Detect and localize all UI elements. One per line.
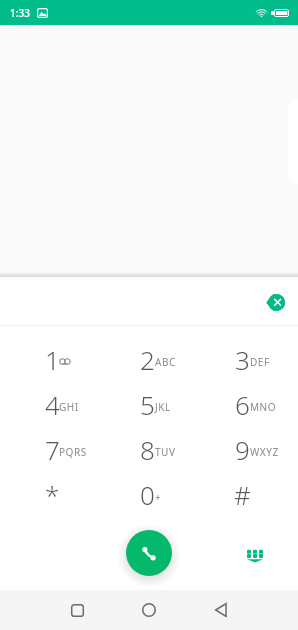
staticText: WXYZ — [250, 445, 279, 459]
button[interactable]: Recents — [57, 590, 97, 630]
button[interactable]: Backspace — [261, 288, 289, 316]
button[interactable]: 7 — [4, 427, 100, 472]
staticText: MNO — [250, 400, 277, 414]
button[interactable]: Home — [129, 590, 169, 630]
button[interactable]: 8 — [100, 427, 195, 472]
staticText: DEF — [250, 355, 270, 369]
staticText: JKL — [155, 400, 171, 414]
button[interactable]: 6 — [195, 382, 290, 427]
staticText: 4 — [45, 387, 60, 422]
staticText: TUV — [155, 445, 176, 459]
button[interactable]: Call — [126, 530, 172, 576]
staticText: 1 — [45, 342, 60, 377]
staticText: 3 — [235, 342, 250, 377]
staticText: 7 — [45, 432, 60, 467]
staticText: 6 — [235, 387, 250, 422]
staticText: 0 — [140, 477, 155, 512]
staticText: PQRS — [59, 445, 87, 459]
staticText: + — [155, 490, 161, 504]
button[interactable]: 9 — [195, 427, 290, 472]
button[interactable]: # — [195, 472, 290, 517]
button[interactable]: 4 — [4, 382, 100, 427]
staticText: # — [234, 477, 251, 512]
button[interactable]: 2 — [100, 337, 195, 382]
staticText: * — [45, 477, 60, 512]
button[interactable]: Back — [201, 590, 241, 630]
staticText: 8 — [140, 432, 155, 467]
button[interactable]: 5 — [100, 382, 195, 427]
staticText: 1:33 — [10, 6, 30, 20]
staticText: 9 — [235, 432, 250, 467]
button[interactable]: * — [4, 472, 100, 517]
staticText: GHI — [59, 400, 79, 414]
staticText: 2 — [140, 342, 155, 377]
button[interactable]: 1 — [4, 337, 100, 382]
button[interactable]: 3 — [195, 337, 290, 382]
staticText: ABC — [155, 355, 176, 369]
button[interactable]: 0 — [100, 472, 195, 517]
button[interactable]: Hide keypad — [241, 541, 269, 569]
staticText: 5 — [140, 387, 155, 422]
